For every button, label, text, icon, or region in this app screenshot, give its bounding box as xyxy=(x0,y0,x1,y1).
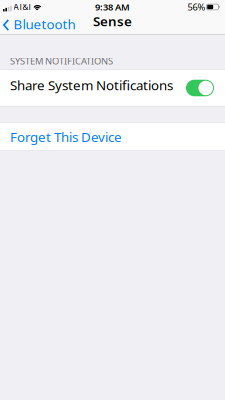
staticText: 9:38 AM xyxy=(95,1,130,13)
staticText: 56% xyxy=(187,1,205,13)
staticText: Share System Notifications xyxy=(10,76,173,94)
button[interactable]: Bluetooth xyxy=(0,15,75,33)
staticText: Sense xyxy=(93,12,132,30)
staticText: Bluetooth xyxy=(13,15,75,33)
staticText: Forget This Device xyxy=(10,128,122,146)
button[interactable]: Forget This Device xyxy=(0,123,225,150)
button[interactable]: Share System Notifications xyxy=(186,80,214,96)
staticText: SYSTEM NOTIFICATIONS xyxy=(10,55,113,67)
staticText: AT&T xyxy=(13,2,31,12)
